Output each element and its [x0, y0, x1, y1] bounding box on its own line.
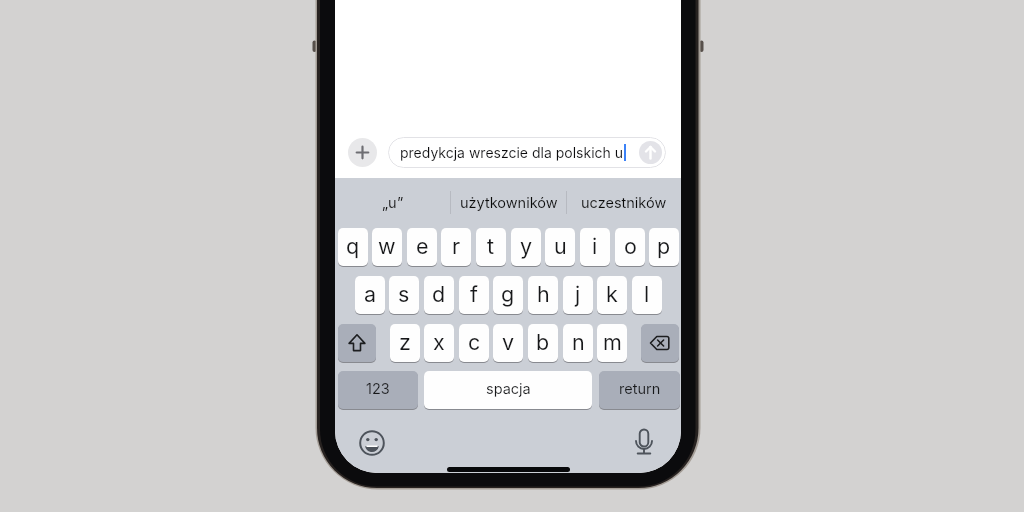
button[interactable]: return: [599, 371, 680, 409]
staticText: s: [398, 281, 410, 307]
button[interactable]: z: [390, 324, 420, 362]
button[interactable]: użytkowników: [451, 183, 566, 223]
button[interactable]: m: [597, 324, 627, 362]
button[interactable]: n: [563, 324, 593, 362]
button[interactable]: [631, 428, 657, 458]
button[interactable]: k: [597, 276, 627, 314]
button[interactable]: r: [441, 228, 471, 266]
staticText: m: [603, 329, 622, 355]
staticText: p: [657, 233, 671, 259]
button[interactable]: e: [407, 228, 437, 266]
staticText: b: [536, 329, 550, 355]
button[interactable]: o: [615, 228, 645, 266]
button[interactable]: uczestników: [566, 183, 681, 223]
button[interactable]: [641, 324, 679, 362]
staticText: użytkowników: [460, 194, 558, 212]
button[interactable]: [348, 138, 377, 167]
button[interactable]: p: [649, 228, 679, 266]
button[interactable]: w: [372, 228, 402, 266]
staticText: spacja: [486, 380, 531, 398]
button[interactable]: x: [424, 324, 454, 362]
button[interactable]: spacja: [424, 371, 592, 409]
staticText: r: [452, 233, 461, 259]
button[interactable]: j: [563, 276, 593, 314]
staticText: x: [433, 329, 445, 355]
button[interactable]: s: [389, 276, 419, 314]
staticText: y: [520, 233, 533, 259]
staticText: w: [378, 233, 396, 259]
button[interactable]: predykcja wreszcie dla polskich u: [388, 137, 666, 168]
staticText: o: [624, 233, 637, 259]
staticText: predykcja wreszcie dla polskich u: [400, 144, 624, 161]
staticText: uczestników: [581, 194, 667, 212]
button[interactable]: i: [580, 228, 610, 266]
button[interactable]: h: [528, 276, 558, 314]
staticText: n: [572, 329, 585, 355]
button[interactable]: d: [424, 276, 454, 314]
button[interactable]: b: [528, 324, 558, 362]
button[interactable]: l: [632, 276, 662, 314]
staticText: c: [468, 329, 481, 355]
staticText: e: [416, 233, 429, 259]
button[interactable]: a: [355, 276, 385, 314]
button[interactable]: v: [493, 324, 523, 362]
staticText: 123: [366, 380, 390, 398]
staticText: d: [432, 281, 446, 307]
button[interactable]: [359, 430, 385, 456]
button[interactable]: [639, 141, 662, 164]
button[interactable]: q: [338, 228, 368, 266]
staticText: h: [537, 281, 550, 307]
staticText: u: [554, 233, 567, 259]
button[interactable]: c: [459, 324, 489, 362]
button[interactable]: [338, 324, 376, 362]
staticText: i: [592, 233, 598, 259]
staticText: a: [364, 281, 377, 307]
staticText: v: [502, 329, 515, 355]
staticText: return: [619, 380, 661, 398]
button[interactable]: t: [476, 228, 506, 266]
staticText: l: [644, 281, 650, 307]
button[interactable]: y: [511, 228, 541, 266]
button[interactable]: „u”: [335, 183, 451, 223]
staticText: j: [575, 281, 581, 307]
button[interactable]: 123: [338, 371, 418, 409]
staticText: k: [606, 281, 618, 307]
staticText: z: [399, 329, 411, 355]
button[interactable]: u: [545, 228, 575, 266]
button[interactable]: f: [459, 276, 489, 314]
staticText: q: [346, 233, 360, 259]
staticText: t: [487, 233, 495, 259]
staticText: „u”: [382, 194, 404, 212]
staticText: g: [501, 281, 515, 307]
staticText: f: [470, 281, 478, 307]
button[interactable]: g: [493, 276, 523, 314]
